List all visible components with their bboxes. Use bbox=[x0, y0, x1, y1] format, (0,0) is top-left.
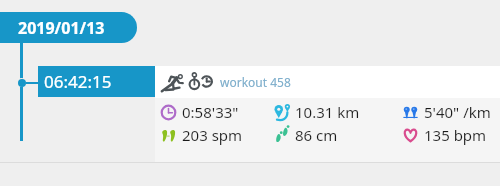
staticText: 203 spm bbox=[182, 125, 243, 145]
staticText: 86 cm bbox=[295, 125, 338, 145]
staticText: 0:58'33" bbox=[182, 102, 239, 122]
staticText: 2019/01/13 bbox=[18, 17, 105, 39]
button[interactable]: 06:42:15 bbox=[38, 66, 155, 97]
staticText: 06:42:15 bbox=[44, 70, 112, 93]
button[interactable]: 2019/01/13 bbox=[0, 12, 137, 43]
staticText: 135 bpm bbox=[424, 125, 487, 145]
staticText: workout 458 bbox=[220, 74, 291, 90]
button[interactable]: workout 458 bbox=[155, 66, 500, 163]
staticText: 10.31 km bbox=[295, 102, 360, 122]
staticText: 5'40" /km bbox=[424, 102, 491, 122]
